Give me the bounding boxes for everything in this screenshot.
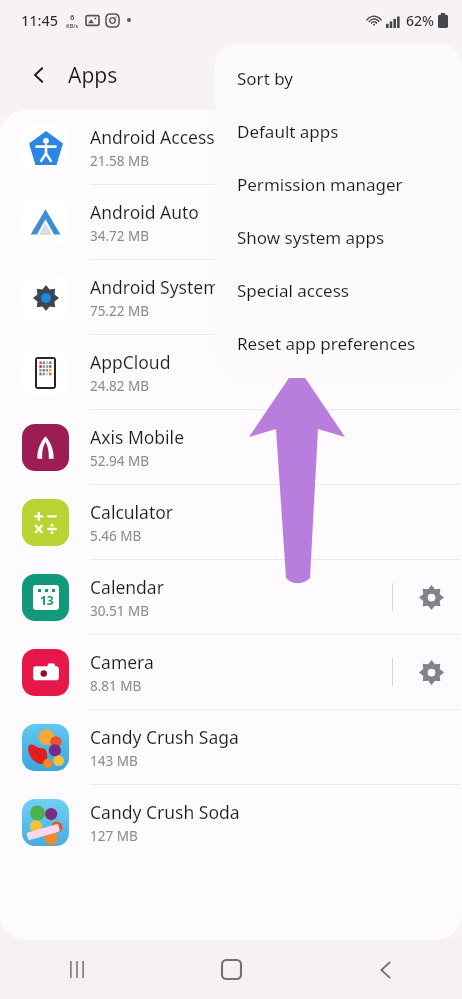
button[interactable]: Android Accessibility Suite <box>0 110 462 184</box>
staticText: Sort by <box>237 67 293 90</box>
button[interactable]: Default apps <box>215 105 462 158</box>
staticText: 30.51 MB <box>90 602 150 620</box>
button[interactable]: Android Auto <box>0 185 462 259</box>
staticText: 6 <box>70 12 75 22</box>
staticText: 75.22 MB <box>90 302 150 320</box>
staticText: 52.94 MB <box>90 452 150 470</box>
staticText: Android Accessibility Suite <box>90 125 305 149</box>
staticText: Calendar <box>90 575 164 599</box>
staticText: Show system apps <box>237 226 385 249</box>
button[interactable]: 13 <box>0 560 462 634</box>
staticText: Candy Crush Saga <box>90 725 239 749</box>
button[interactable]: Android System WebView <box>0 260 462 334</box>
staticText: Default apps <box>237 120 339 143</box>
staticText: 11:45 <box>21 10 59 30</box>
button[interactable]: Calculator <box>0 485 462 559</box>
button[interactable]: Back <box>308 940 462 999</box>
button[interactable]: Candy Crush Saga <box>0 710 462 784</box>
button[interactable]: Back <box>18 54 60 96</box>
staticText: Camera <box>90 650 154 674</box>
button[interactable]: Recent apps <box>0 940 154 999</box>
staticText: 127 MB <box>90 827 138 845</box>
staticText: Candy Crush Soda <box>90 800 240 824</box>
staticText: 21.58 MB <box>90 152 150 170</box>
staticText: 62% <box>406 11 434 30</box>
staticText: Android Auto <box>90 200 199 224</box>
button[interactable]: Axis Mobile <box>0 410 462 484</box>
staticText: KB/s <box>66 22 79 29</box>
staticText: Android System WebView <box>90 275 299 299</box>
staticText: 8.81 MB <box>90 677 142 695</box>
button[interactable]: Special access <box>215 264 462 317</box>
button[interactable]: Show system apps <box>215 211 462 264</box>
button[interactable]: Sort by <box>215 52 462 105</box>
button[interactable]: Home <box>154 940 308 999</box>
staticText: Permission manager <box>237 173 403 196</box>
button[interactable]: Permission manager <box>215 158 462 211</box>
staticText: Calculator <box>90 500 174 524</box>
button[interactable]: Camera <box>0 635 462 709</box>
button[interactable]: AppCloud <box>0 335 462 409</box>
staticText: 13 <box>40 592 54 608</box>
staticText: 34.72 MB <box>90 227 150 245</box>
staticText: 143 MB <box>90 752 138 770</box>
staticText: 24.82 MB <box>90 377 150 395</box>
staticText: Special access <box>237 279 349 302</box>
staticText: Apps <box>68 61 118 90</box>
button[interactable]: Candy Crush Soda <box>0 785 462 859</box>
button[interactable]: App settings <box>400 635 462 709</box>
button[interactable]: App settings <box>400 560 462 634</box>
staticText: Reset app preferences <box>237 332 416 355</box>
button[interactable]: Reset app preferences <box>215 317 462 370</box>
staticText: 5.46 MB <box>90 527 142 545</box>
staticText: AppCloud <box>90 350 171 374</box>
staticText: Axis Mobile <box>90 425 185 449</box>
